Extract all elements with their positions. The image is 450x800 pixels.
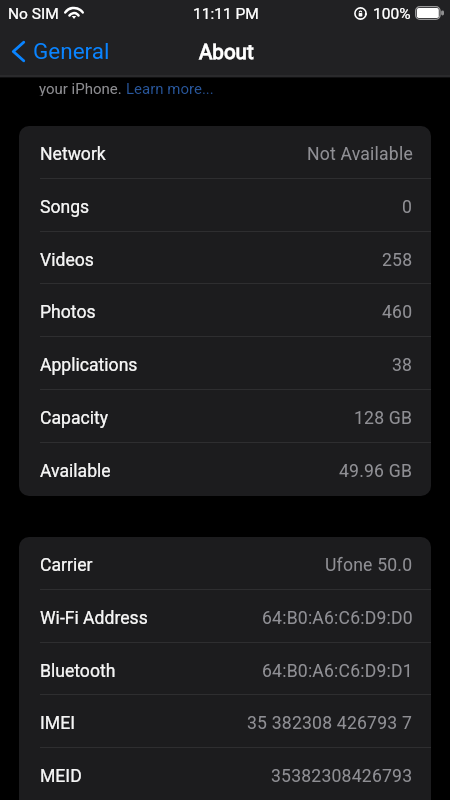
staticText: 64:B0:A6:C6:D9:D1 — [262, 661, 413, 682]
staticText: your iPhone. — [39, 80, 126, 96]
staticText: 100% — [373, 5, 411, 23]
button[interactable]: IMEI — [19, 695, 431, 748]
button[interactable]: Capacity — [19, 390, 431, 443]
button[interactable]: Bluetooth — [19, 643, 431, 696]
other: Rotation lock — [354, 7, 367, 20]
button[interactable]: Wi-Fi Address — [19, 590, 431, 643]
other: Battery 100 percent — [415, 6, 444, 20]
staticText: 38 — [392, 355, 413, 376]
button[interactable]: Available — [19, 443, 431, 496]
other: Back to General — [12, 41, 25, 62]
button[interactable]: MEID — [19, 748, 431, 800]
button[interactable]: Applications — [19, 337, 431, 390]
staticText: Applications — [40, 355, 138, 376]
staticText: 35 382308 426793 7 — [247, 713, 413, 734]
button[interactable]: Videos — [19, 232, 431, 285]
staticText: Photos — [40, 302, 96, 323]
staticText: Capacity — [40, 408, 109, 429]
staticText: 0 — [402, 197, 413, 218]
button[interactable]: Back to General — [12, 38, 110, 64]
staticText: No SIM — [8, 5, 59, 23]
staticText: Ufone 50.0 — [325, 555, 413, 576]
staticText: Wi-Fi Address — [40, 608, 148, 629]
button[interactable]: Network — [19, 126, 431, 179]
staticText: General — [33, 38, 110, 64]
button[interactable]: Carrier — [19, 537, 431, 590]
staticText: 258 — [382, 250, 413, 271]
staticText: 49.96 GB — [339, 461, 413, 482]
button[interactable]: Photos — [19, 284, 431, 337]
staticText: 64:B0:A6:C6:D9:D0 — [262, 608, 413, 629]
staticText: 128 GB — [354, 408, 413, 429]
staticText: Network — [40, 144, 106, 165]
staticText: Available — [40, 461, 111, 482]
staticText: Bluetooth — [40, 661, 116, 682]
button[interactable]: Learn more... — [126, 80, 214, 96]
staticText: Songs — [40, 197, 90, 218]
button[interactable]: Songs — [19, 179, 431, 232]
other: Wi-Fi — [65, 5, 83, 19]
staticText: Videos — [40, 250, 94, 271]
staticText: MEID — [40, 766, 82, 787]
staticText: 11:11 PM — [193, 5, 259, 23]
staticText: Not Available — [307, 144, 413, 165]
staticText: IMEI — [40, 713, 75, 734]
staticText: 460 — [382, 302, 413, 323]
staticText: 35382308426793 — [271, 766, 413, 787]
staticText: Carrier — [40, 555, 93, 576]
staticText: About — [199, 40, 254, 64]
